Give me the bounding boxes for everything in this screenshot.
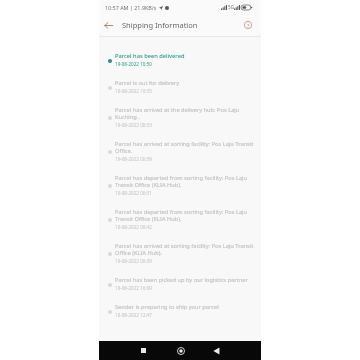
staticText: ? — [247, 22, 250, 29]
button[interactable]: Parcel has been picked up by our logisti… — [99, 270, 261, 297]
staticText: 19-08-2022 10:35 — [115, 88, 152, 94]
button[interactable]: Help — [241, 18, 255, 32]
button[interactable]: Home — [172, 342, 189, 359]
staticText: 19-08-2022 08:53 — [115, 122, 152, 128]
staticText: 19-08-2022 10:50 — [115, 61, 152, 67]
staticText: 10:57 AM | 21.9KB/s — [105, 4, 157, 11]
staticText: 19-08-2022 00:42 — [115, 224, 152, 230]
staticText: 18-08-2022 16:09 — [115, 285, 152, 291]
staticText: 19-08-2022 00:59 — [115, 156, 152, 162]
button[interactable]: Back — [100, 17, 116, 33]
staticText: 5G — [228, 4, 234, 10]
button[interactable]: Back — [208, 342, 225, 359]
button[interactable]: Parcel is out for delivery — [99, 73, 261, 100]
button[interactable]: Parcel has arrived at sorting facility: … — [99, 236, 261, 270]
staticText: Sender is preparing to ship your parcel — [115, 303, 219, 311]
button[interactable]: Parcel has been delivered — [99, 46, 261, 73]
button[interactable]: Parcel has arrived at the delivery hub: … — [99, 100, 261, 134]
staticText: Parcel has been delivered — [115, 52, 185, 60]
button[interactable]: Parcel has departed from sorting facilit… — [99, 202, 261, 236]
staticText: Parcel has arrived at the delivery hub: … — [115, 106, 256, 121]
button[interactable]: Recent apps — [135, 342, 152, 359]
staticText: Parcel has departed from sorting facilit… — [115, 208, 256, 223]
staticText: Parcel has arrived at sorting facility: … — [115, 140, 256, 155]
staticText: 19-08-2022 00:51 — [115, 190, 152, 196]
staticText: 19-08-2022 00:39 — [115, 258, 152, 264]
staticText: 18-08-2022 12:47 — [115, 312, 152, 318]
button[interactable]: Parcel has departed from sorting facilit… — [99, 168, 261, 202]
button[interactable]: Sender is preparing to ship your parcel — [99, 297, 261, 324]
staticText: Parcel has arrived at sorting facility: … — [115, 242, 256, 257]
staticText: Shipping Information — [122, 20, 198, 30]
staticText: Parcel is out for delivery — [115, 79, 180, 87]
staticText: Parcel has been picked up by our logisti… — [115, 276, 248, 284]
button[interactable]: Parcel has arrived at sorting facility: … — [99, 134, 261, 168]
staticText: Parcel has departed from sorting facilit… — [115, 174, 256, 189]
